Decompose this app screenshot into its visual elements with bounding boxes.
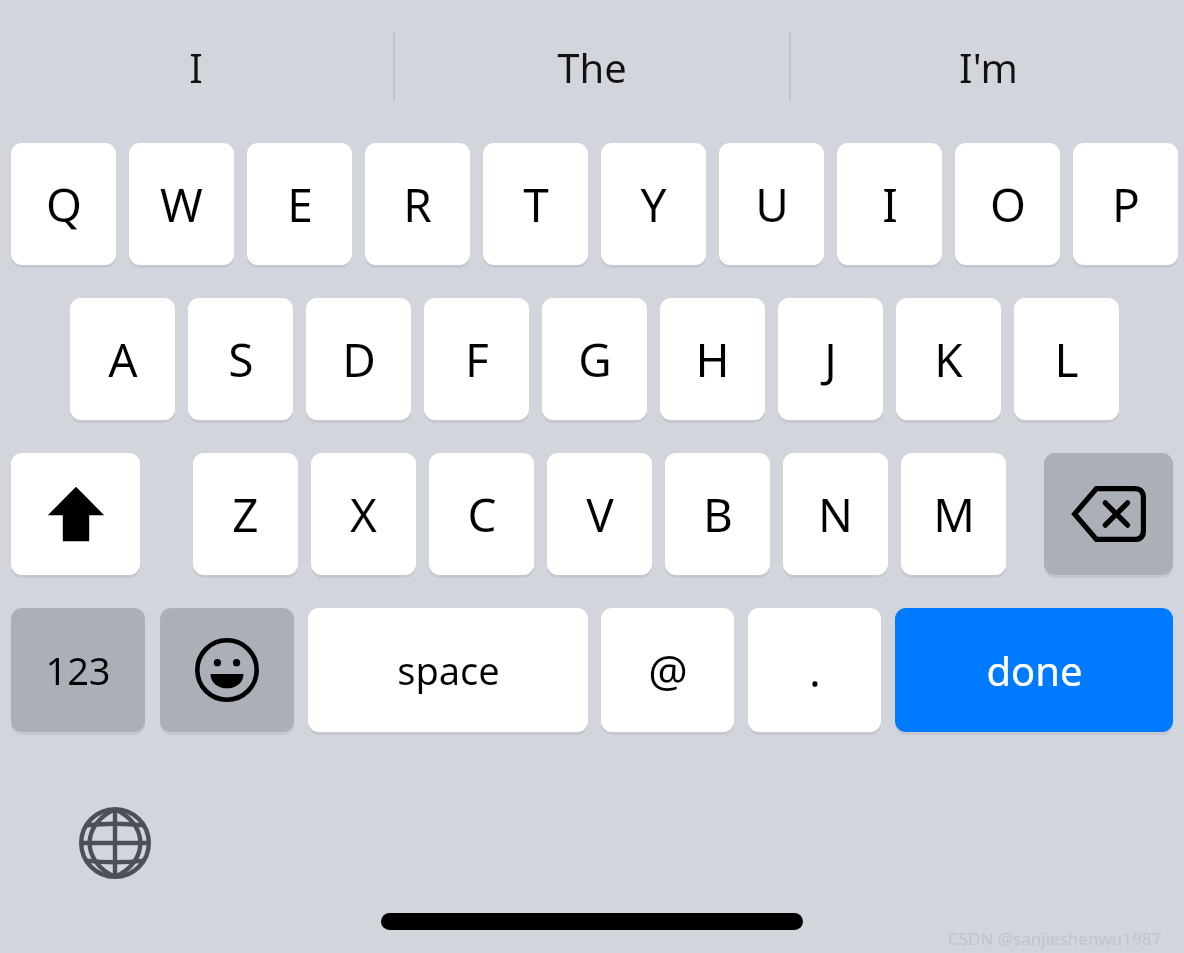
staticText: CSDN @sanjieshenwu1987: [948, 927, 1162, 950]
button[interactable]: Emoji: [160, 608, 294, 732]
button[interactable]: S: [188, 298, 293, 420]
button[interactable]: E: [247, 143, 352, 265]
button[interactable]: M: [901, 453, 1006, 575]
staticText: B: [703, 483, 733, 546]
button[interactable]: Z: [193, 453, 298, 575]
button[interactable]: A: [70, 298, 175, 420]
button[interactable]: B: [665, 453, 770, 575]
staticText: T: [523, 173, 549, 236]
staticText: The: [557, 40, 627, 94]
button[interactable]: done: [895, 608, 1173, 732]
button[interactable]: Change keyboard language: [76, 804, 154, 882]
staticText: F: [465, 328, 489, 391]
button[interactable]: O: [955, 143, 1060, 265]
button[interactable]: @: [601, 608, 734, 732]
button[interactable]: I: [46, 22, 346, 112]
button[interactable]: I: [837, 143, 942, 265]
button[interactable]: F: [424, 298, 529, 420]
staticText: done: [986, 643, 1083, 697]
button[interactable]: D: [306, 298, 411, 420]
staticText: .: [809, 640, 821, 700]
staticText: I'm: [959, 40, 1018, 94]
staticText: @: [648, 640, 688, 700]
staticText: S: [228, 328, 254, 391]
button[interactable]: U: [719, 143, 824, 265]
staticText: H: [695, 328, 730, 391]
button[interactable]: Shift: [11, 453, 140, 575]
staticText: X: [350, 483, 377, 546]
staticText: V: [586, 483, 614, 546]
button[interactable]: The: [442, 22, 742, 112]
button[interactable]: K: [896, 298, 1001, 420]
button[interactable]: N: [783, 453, 888, 575]
staticText: O: [990, 173, 1026, 236]
button[interactable]: J: [778, 298, 883, 420]
staticText: J: [824, 328, 837, 391]
staticText: R: [403, 173, 432, 236]
button[interactable]: X: [311, 453, 416, 575]
button[interactable]: .: [748, 608, 881, 732]
button[interactable]: I'm: [838, 22, 1138, 112]
button[interactable]: L: [1014, 298, 1119, 420]
staticText: U: [755, 173, 789, 236]
staticText: N: [818, 483, 853, 546]
staticText: space: [397, 644, 500, 696]
staticText: Z: [232, 483, 259, 546]
button[interactable]: H: [660, 298, 765, 420]
staticText: I: [189, 40, 203, 94]
button[interactable]: C: [429, 453, 534, 575]
button[interactable]: G: [542, 298, 647, 420]
staticText: A: [108, 328, 138, 391]
button[interactable]: Backspace: [1044, 453, 1173, 575]
staticText: W: [160, 173, 203, 236]
button[interactable]: space: [308, 608, 588, 732]
staticText: P: [1112, 173, 1140, 236]
staticText: G: [578, 328, 612, 391]
staticText: E: [287, 173, 313, 236]
staticText: C: [467, 483, 497, 546]
button[interactable]: T: [483, 143, 588, 265]
button[interactable]: P: [1073, 143, 1178, 265]
staticText: I: [882, 173, 898, 236]
staticText: L: [1054, 328, 1079, 391]
button[interactable]: Y: [601, 143, 706, 265]
button[interactable]: Q: [11, 143, 116, 265]
staticText: Y: [640, 173, 667, 236]
button[interactable]: V: [547, 453, 652, 575]
button[interactable]: R: [365, 143, 470, 265]
staticText: K: [934, 328, 963, 391]
button[interactable]: W: [129, 143, 234, 265]
staticText: D: [342, 328, 376, 391]
button[interactable]: 123: [11, 608, 145, 732]
staticText: 123: [45, 644, 111, 696]
staticText: M: [933, 483, 975, 546]
staticText: Q: [46, 173, 82, 236]
